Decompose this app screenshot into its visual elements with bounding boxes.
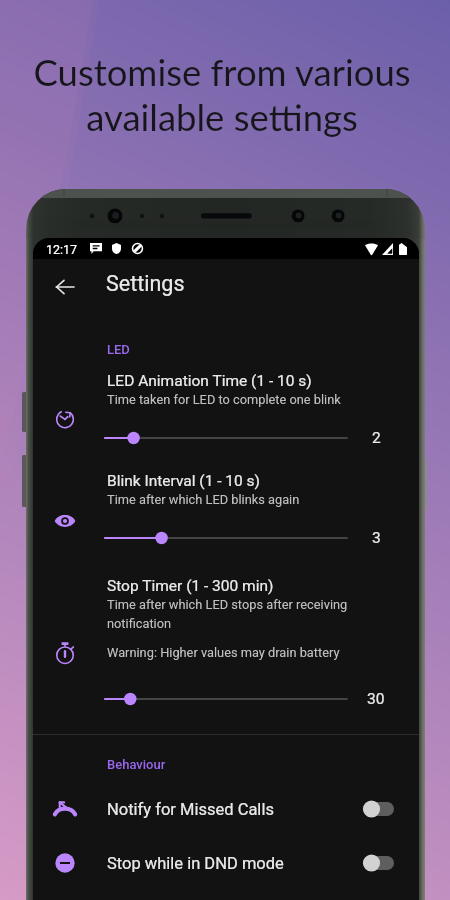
staticText: LED	[107, 342, 130, 357]
staticText: Warning: Higher values may drain battery	[107, 645, 340, 660]
staticText: 3	[372, 529, 381, 547]
staticText: Stop while in DND mode	[107, 854, 284, 873]
button[interactable]: Blink Interval (1 - 10 s)	[33, 464, 419, 552]
staticText: Customise from various available setting…	[33, 50, 411, 139]
staticText: 2	[372, 429, 381, 447]
staticText: Settings	[106, 271, 185, 296]
staticText: Time taken for LED to complete one blink	[107, 392, 341, 407]
staticText: Stop Timer (1 - 300 min)	[107, 577, 274, 595]
staticText: Blink Interval (1 - 10 s)	[107, 472, 261, 490]
button[interactable]: Stop while in DND mode	[33, 837, 419, 889]
staticText: Notify for Missed Calls	[107, 800, 274, 819]
button[interactable]: Stop Timer (1 - 300 min)	[33, 569, 419, 713]
button[interactable]: LED Animation Time (1 - 10 s)	[33, 364, 419, 452]
staticText: Behaviour	[107, 757, 166, 772]
staticText: 30	[367, 690, 385, 708]
staticText: Time after which LED stops after receivi…	[107, 597, 348, 631]
button[interactable]: Back	[46, 268, 84, 306]
staticText: Time after which LED blinks again	[107, 492, 300, 507]
staticText: 12:17	[46, 242, 78, 257]
staticText: LED Animation Time (1 - 10 s)	[107, 372, 312, 390]
button[interactable]: Notify for Missed Calls	[33, 783, 419, 835]
